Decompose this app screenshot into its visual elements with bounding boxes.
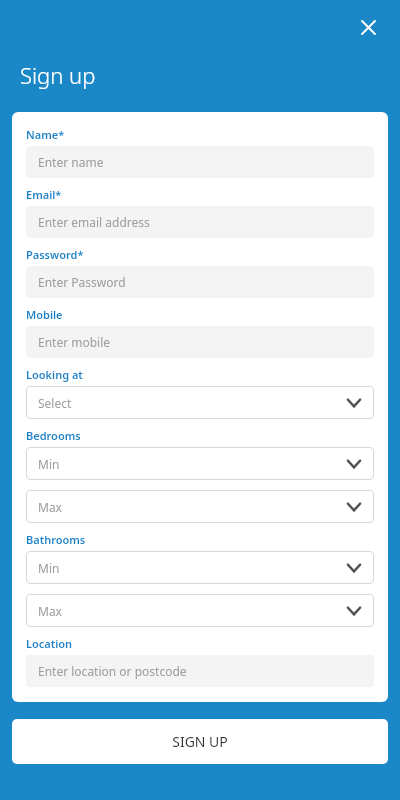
staticText: Password* [26, 247, 84, 262]
staticText: SIGN UP [172, 732, 228, 751]
button[interactable]: Select [26, 386, 374, 419]
staticText: Enter email address [38, 214, 150, 230]
button[interactable]: Max [26, 490, 374, 523]
staticText: Location [26, 636, 73, 651]
other: Open Select dropdown [345, 394, 363, 412]
staticText: Mobile [26, 307, 63, 322]
button[interactable]: Enter email address [26, 206, 374, 238]
staticText: Bedrooms [26, 428, 81, 443]
button[interactable]: Min [26, 551, 374, 584]
button[interactable]: Enter mobile [26, 326, 374, 358]
staticText: Bathrooms [26, 532, 86, 547]
staticText: Enter location or postcode [38, 663, 187, 679]
button[interactable]: Max [26, 594, 374, 627]
other: Open Max dropdown [345, 602, 363, 620]
button[interactable]: SIGN UP [12, 719, 388, 764]
staticText: Looking at [26, 367, 83, 382]
staticText: Enter Password [38, 274, 126, 290]
staticText: Min [38, 456, 60, 472]
other: Open Max dropdown [345, 498, 363, 516]
staticText: Sign up [20, 60, 96, 90]
staticText: Enter mobile [38, 334, 111, 350]
button[interactable]: Enter Password [26, 266, 374, 298]
staticText: Min [38, 560, 60, 576]
staticText: Email* [26, 187, 62, 202]
staticText: Select [38, 395, 72, 411]
staticText: Enter name [38, 154, 104, 170]
button[interactable]: Close [351, 10, 385, 44]
staticText: Max [38, 499, 62, 515]
other: Open Min dropdown [345, 455, 363, 473]
other: Open Min dropdown [345, 559, 363, 577]
button[interactable]: Min [26, 447, 374, 480]
staticText: Max [38, 603, 62, 619]
button[interactable]: Enter name [26, 146, 374, 178]
staticText: Name* [26, 127, 65, 142]
button[interactable]: Enter location or postcode [26, 655, 374, 687]
